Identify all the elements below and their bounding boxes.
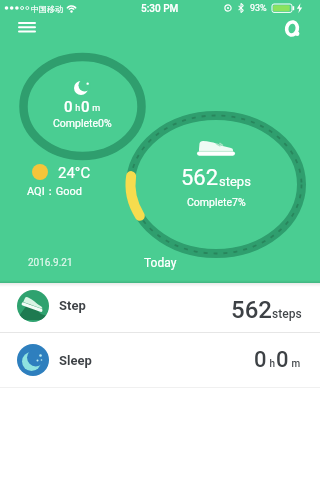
- staticText: 93%: [250, 3, 267, 14]
- staticText: 5:30 PM: [141, 3, 179, 15]
- staticText: 24°C: [58, 164, 91, 182]
- staticText: Sleep: [59, 353, 92, 368]
- staticText: h: [267, 358, 276, 370]
- staticText: 0: [276, 347, 289, 373]
- staticText: 562: [181, 165, 219, 191]
- staticText: 0: [254, 347, 267, 373]
- staticText: Today: [144, 256, 177, 270]
- staticText: Step: [59, 298, 86, 313]
- staticText: 0: [64, 98, 73, 116]
- staticText: 0: [81, 98, 90, 116]
- staticText: AQI：Good: [27, 184, 82, 198]
- staticText: m: [289, 358, 301, 370]
- staticText: Complete7%: [187, 196, 246, 208]
- staticText: 562: [231, 296, 272, 324]
- staticText: steps: [219, 174, 251, 189]
- staticText: 中国移动: [31, 4, 63, 14]
- staticText: h: [73, 103, 81, 114]
- staticText: Complete0%: [53, 117, 112, 129]
- staticText: steps: [272, 307, 302, 321]
- button[interactable]: Sleep: [0, 333, 320, 387]
- button[interactable]: Step: [0, 283, 320, 332]
- staticText: 2016.9.21: [28, 257, 73, 269]
- button[interactable]: [12, 18, 42, 38]
- staticText: m: [90, 103, 101, 114]
- button[interactable]: [281, 17, 303, 39]
